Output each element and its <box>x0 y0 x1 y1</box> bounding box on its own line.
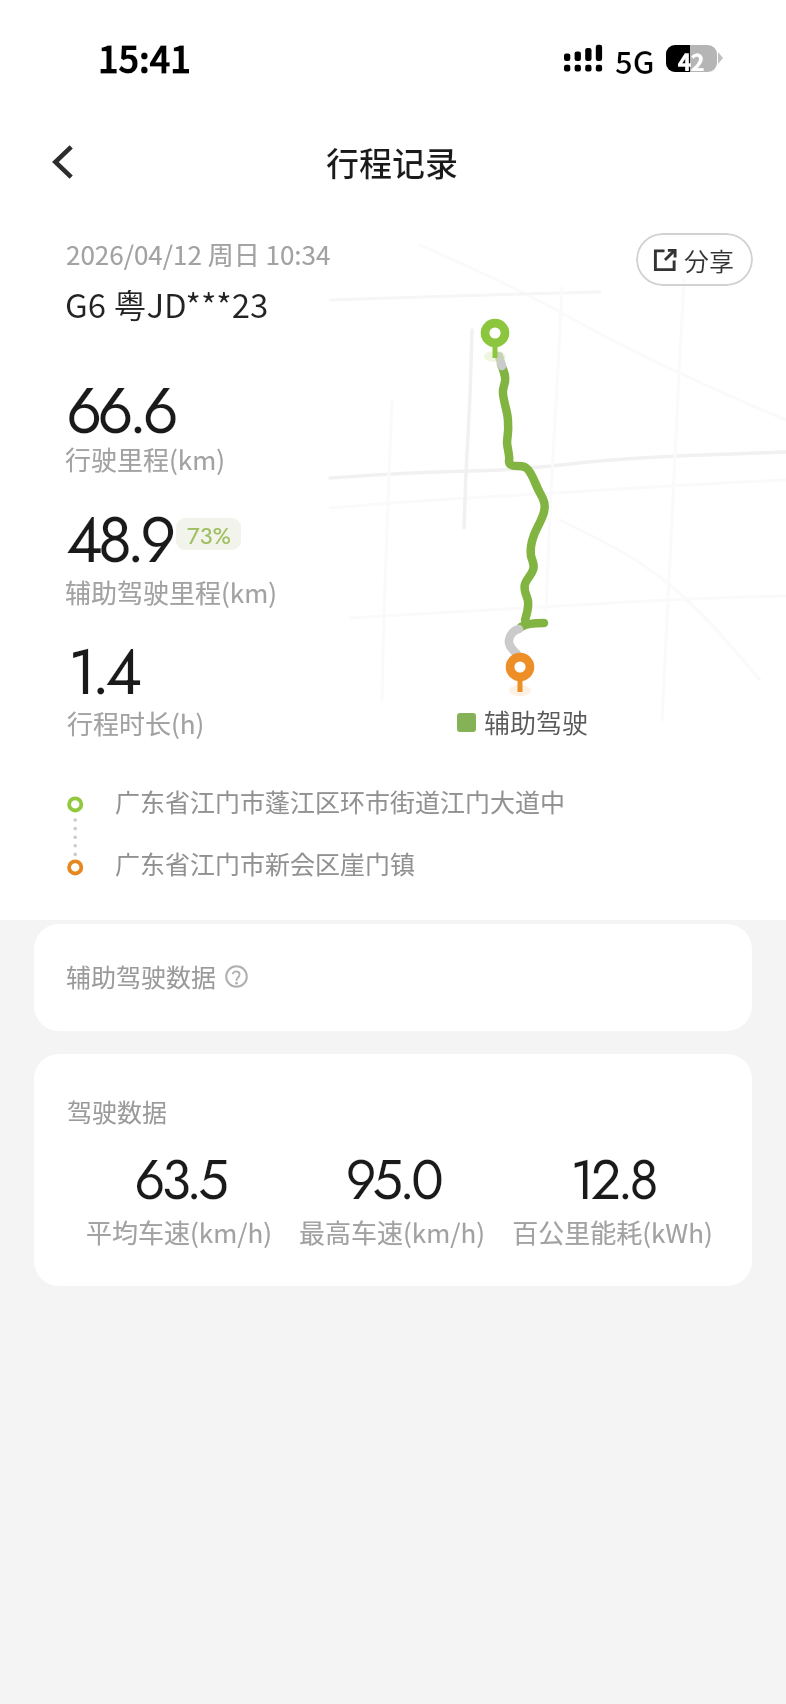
staticText: 行驶里程(km) <box>65 440 226 478</box>
button[interactable]: 辅助驾驶数据 <box>34 924 752 1031</box>
staticText: 辅助驾驶里程(km) <box>65 573 278 611</box>
staticText: 驾驶数据 <box>67 1093 168 1129</box>
staticText: 42 <box>678 45 705 71</box>
staticText: 66.6 <box>66 366 174 457</box>
staticText: 辅助驾驶 <box>484 703 589 741</box>
staticText: 辅助驾驶数据 <box>66 958 217 994</box>
staticText: 行程记录 <box>326 138 458 186</box>
staticText: 行程时长(h) <box>67 704 205 742</box>
staticText: 12.8 <box>570 1141 655 1219</box>
staticText: 63.5 <box>134 1141 225 1219</box>
staticText: 5G <box>615 38 655 83</box>
staticText: 48.9 <box>66 495 172 586</box>
button[interactable]: 分享 <box>636 233 753 286</box>
staticText: G6 粤JD***23 <box>65 280 269 328</box>
staticText: 广东省江门市新会区崖门镇 <box>115 845 416 881</box>
staticText: 73% <box>187 518 231 550</box>
staticText: 2026/04/12 周日 10:34 <box>66 235 331 273</box>
staticText: 分享 <box>684 242 735 278</box>
staticText: 95.0 <box>345 1141 440 1219</box>
button[interactable]: Back <box>35 133 93 191</box>
staticText: 百公里能耗(kWh) <box>512 1213 713 1251</box>
staticText: 平均车速(km/h) <box>86 1213 272 1251</box>
staticText: 广东省江门市蓬江区环市街道江门大道中 <box>115 783 566 819</box>
staticText: 15:41 <box>98 31 191 83</box>
staticText: 1.4 <box>68 627 137 718</box>
button[interactable]: 驾驶数据 <box>34 1054 752 1286</box>
staticText: 最高车速(km/h) <box>299 1213 485 1251</box>
